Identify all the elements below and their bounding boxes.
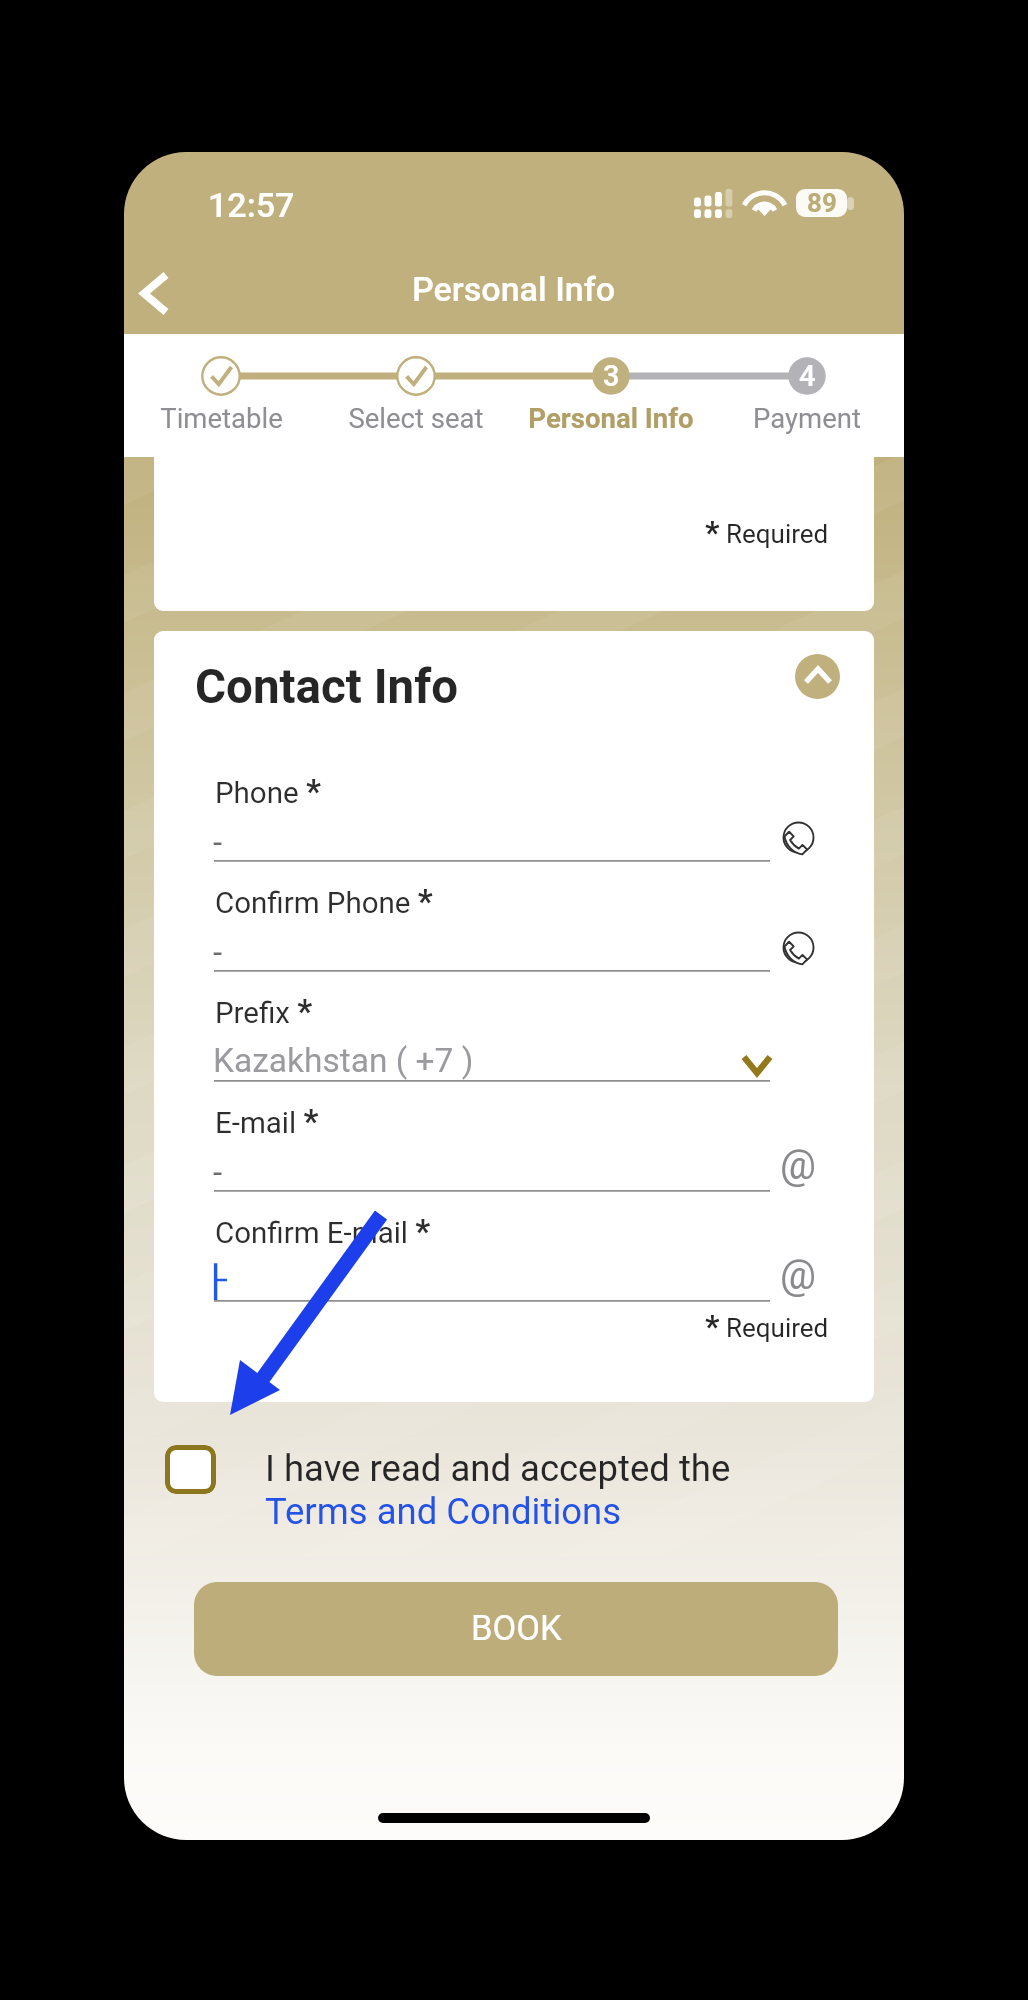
button[interactable] bbox=[206, 878, 832, 974]
button[interactable]: Phone number help bbox=[774, 813, 822, 861]
button[interactable] bbox=[206, 1208, 832, 1304]
staticText: Personal Info bbox=[412, 269, 616, 309]
staticText: Payment bbox=[753, 402, 861, 434]
staticText: - bbox=[213, 933, 223, 972]
staticText: Contact Info bbox=[195, 659, 459, 715]
staticText: @ bbox=[780, 1142, 816, 1189]
staticText: Prefix * bbox=[215, 992, 313, 1031]
staticText: @ bbox=[780, 1252, 816, 1299]
button[interactable] bbox=[206, 988, 832, 1084]
staticText: * Required bbox=[705, 513, 829, 551]
staticText: Select seat bbox=[348, 402, 484, 434]
button[interactable]: Payment bbox=[697, 402, 904, 448]
staticText: Phone * bbox=[215, 772, 321, 811]
staticText: 89 bbox=[807, 189, 837, 216]
staticText: E-mail * bbox=[215, 1102, 319, 1141]
button[interactable]: Choose country prefix bbox=[730, 1042, 784, 1086]
staticText: 3 bbox=[603, 359, 620, 393]
staticText: Timetable bbox=[160, 402, 283, 434]
button[interactable]: I have read and accepted the bbox=[265, 1447, 731, 1490]
staticText: 4 bbox=[799, 359, 816, 393]
button[interactable]: Terms and Conditions bbox=[265, 1490, 622, 1533]
button[interactable]: E-mail help bbox=[774, 1143, 822, 1191]
button[interactable]: Phone number help bbox=[774, 923, 822, 971]
button[interactable]: Back bbox=[124, 260, 196, 334]
button[interactable]: Timetable bbox=[124, 402, 331, 448]
staticText: * Required bbox=[705, 1307, 829, 1345]
staticText: - bbox=[213, 1153, 223, 1192]
button[interactable]: Accept terms checkbox bbox=[165, 1445, 216, 1494]
staticText: Kazakhstan ( +7 ) bbox=[213, 1041, 474, 1080]
staticText: Confirm E-mail * bbox=[215, 1212, 431, 1251]
staticText: - bbox=[213, 823, 223, 862]
staticText: 12:57 bbox=[208, 185, 295, 225]
staticText: BOOK bbox=[471, 1608, 562, 1648]
button[interactable]: Personal Info bbox=[501, 402, 721, 448]
staticText: Personal Info bbox=[528, 402, 694, 434]
button[interactable] bbox=[206, 1098, 832, 1194]
button[interactable]: BOOK bbox=[194, 1582, 838, 1676]
button[interactable]: Collapse section bbox=[795, 654, 840, 699]
staticText: Confirm Phone * bbox=[215, 882, 433, 921]
button[interactable]: E-mail help bbox=[774, 1253, 822, 1301]
button[interactable] bbox=[206, 768, 832, 864]
button[interactable]: Select seat bbox=[306, 402, 526, 448]
